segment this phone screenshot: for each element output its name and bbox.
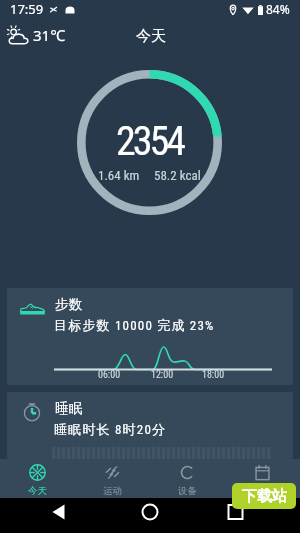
staticText: 31℃ [33, 25, 66, 45]
button[interactable]: 步数 [7, 288, 293, 385]
button[interactable]: 今天 [0, 459, 75, 498]
staticText: 目标步数 10000 完成 23% [54, 317, 215, 333]
staticText: 更多 [253, 485, 272, 497]
staticText: 12:00 [151, 369, 174, 381]
staticText: 睡眠 [55, 400, 84, 417]
staticText: 58.2 kcal [154, 168, 201, 183]
staticText: 今天 [136, 27, 166, 46]
staticText: 18:00 [202, 369, 225, 381]
staticText: 2354 [116, 118, 183, 165]
staticText: 运动 [103, 485, 122, 497]
staticText: 下载站 [242, 487, 287, 506]
staticText: 今天 [28, 485, 47, 497]
button[interactable]: 运动 [75, 459, 150, 498]
staticText: 步数 [55, 296, 84, 313]
staticText: 17:59 [10, 0, 44, 18]
staticText: 设备 [178, 485, 197, 497]
staticText: 06:00 [98, 369, 121, 381]
button[interactable]: 设备 [150, 459, 225, 498]
staticText: 1.64 km [98, 168, 140, 183]
staticText: 睡眠时长 8时20分 [54, 421, 167, 437]
button[interactable]: Weather [7, 26, 66, 46]
button[interactable]: 睡眠 [7, 392, 293, 459]
button[interactable]: 更多 [225, 459, 300, 498]
other: Weather [7, 27, 29, 45]
staticText: 84% [266, 1, 290, 17]
